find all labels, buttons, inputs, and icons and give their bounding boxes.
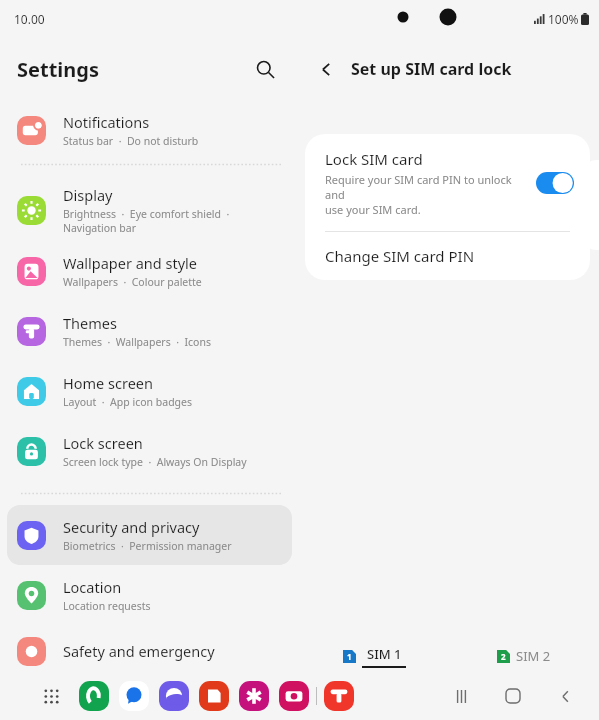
button[interactable]: Themes — [7, 301, 292, 361]
staticText: 10.00 — [14, 11, 45, 27]
staticText: Brightness · Eye comfort shield · — [63, 207, 230, 221]
staticText: Security and privacy — [63, 517, 200, 537]
staticText: Lock SIM card — [325, 149, 423, 169]
staticText: Location — [63, 577, 122, 597]
staticText: 100% — [548, 11, 579, 27]
button[interactable]: Home screen — [7, 361, 292, 421]
button[interactable]: Notifications — [7, 100, 292, 160]
staticText: use your SIM card. — [325, 202, 421, 217]
staticText: SIM 1 — [367, 645, 402, 663]
button[interactable]: Lock SIM card toggle — [536, 172, 574, 194]
button[interactable]: Lock screen — [7, 421, 292, 481]
staticText: Home screen — [63, 373, 153, 393]
staticText: Notifications — [63, 112, 150, 132]
button[interactable]: Back — [549, 680, 581, 712]
staticText: Lock screen — [63, 433, 143, 453]
staticText: Require your SIM card PIN to unlock and — [325, 172, 528, 202]
staticText: SIM 2 — [516, 647, 551, 665]
staticText: Layout · App icon badges — [63, 395, 193, 409]
button[interactable]: Camera — [279, 681, 309, 711]
button[interactable]: Apps — [36, 681, 66, 711]
button[interactable]: My Files — [199, 681, 229, 711]
button[interactable]: Safety and emergency — [7, 625, 292, 677]
button[interactable]: Back — [307, 50, 345, 88]
staticText: Settings — [17, 56, 99, 83]
button[interactable]: Lock SIM card — [305, 134, 590, 231]
staticText: Set up SIM card lock — [351, 58, 512, 80]
staticText: Location requests — [63, 599, 151, 613]
button[interactable]: 1 — [299, 630, 449, 682]
button[interactable]: Internet — [159, 681, 189, 711]
staticText: Wallpapers · Colour palette — [63, 275, 202, 289]
staticText: 2 — [501, 651, 506, 662]
button[interactable]: Themes — [324, 681, 354, 711]
staticText: Screen lock type · Always On Display — [63, 455, 247, 469]
button[interactable]: Wallpaper and style — [7, 241, 292, 301]
button[interactable]: Security and privacy — [7, 505, 292, 565]
staticText: Change SIM card PIN — [325, 246, 475, 266]
button[interactable]: Recents — [445, 680, 477, 712]
button[interactable]: Home — [497, 680, 529, 712]
staticText: Themes · Wallpapers · Icons — [63, 335, 211, 349]
staticText: Safety and emergency — [63, 641, 215, 661]
button[interactable]: Location — [7, 565, 292, 625]
button[interactable]: Search — [245, 49, 285, 89]
button[interactable]: Change SIM card PIN — [305, 232, 590, 280]
staticText: Status bar · Do not disturb — [63, 134, 199, 148]
button[interactable]: Gallery — [239, 681, 269, 711]
staticText: Biometrics · Permission manager — [63, 539, 232, 553]
staticText: Display — [63, 185, 113, 205]
staticText: Themes — [63, 313, 117, 333]
staticText: 1 — [347, 651, 352, 662]
staticText: Navigation bar — [63, 221, 137, 235]
button[interactable]: Messages — [119, 681, 149, 711]
staticText: Wallpaper and style — [63, 253, 197, 273]
button[interactable]: 2 — [449, 630, 599, 682]
button[interactable]: Display — [7, 179, 292, 241]
button[interactable]: Phone — [79, 681, 109, 711]
